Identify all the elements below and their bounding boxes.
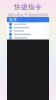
button[interactable] bbox=[7, 36, 49, 39]
staticText: 用自动化节省你的时间 bbox=[8, 13, 48, 18]
button[interactable]: 立即体验 bbox=[19, 21, 36, 26]
staticText: 推荐 bbox=[9, 17, 17, 22]
staticText: 快捷指令 bbox=[14, 3, 42, 11]
staticText: 立即体验 bbox=[22, 22, 34, 25]
button[interactable] bbox=[7, 29, 49, 33]
button[interactable] bbox=[7, 33, 49, 36]
button[interactable] bbox=[7, 26, 49, 29]
button[interactable] bbox=[7, 22, 49, 26]
